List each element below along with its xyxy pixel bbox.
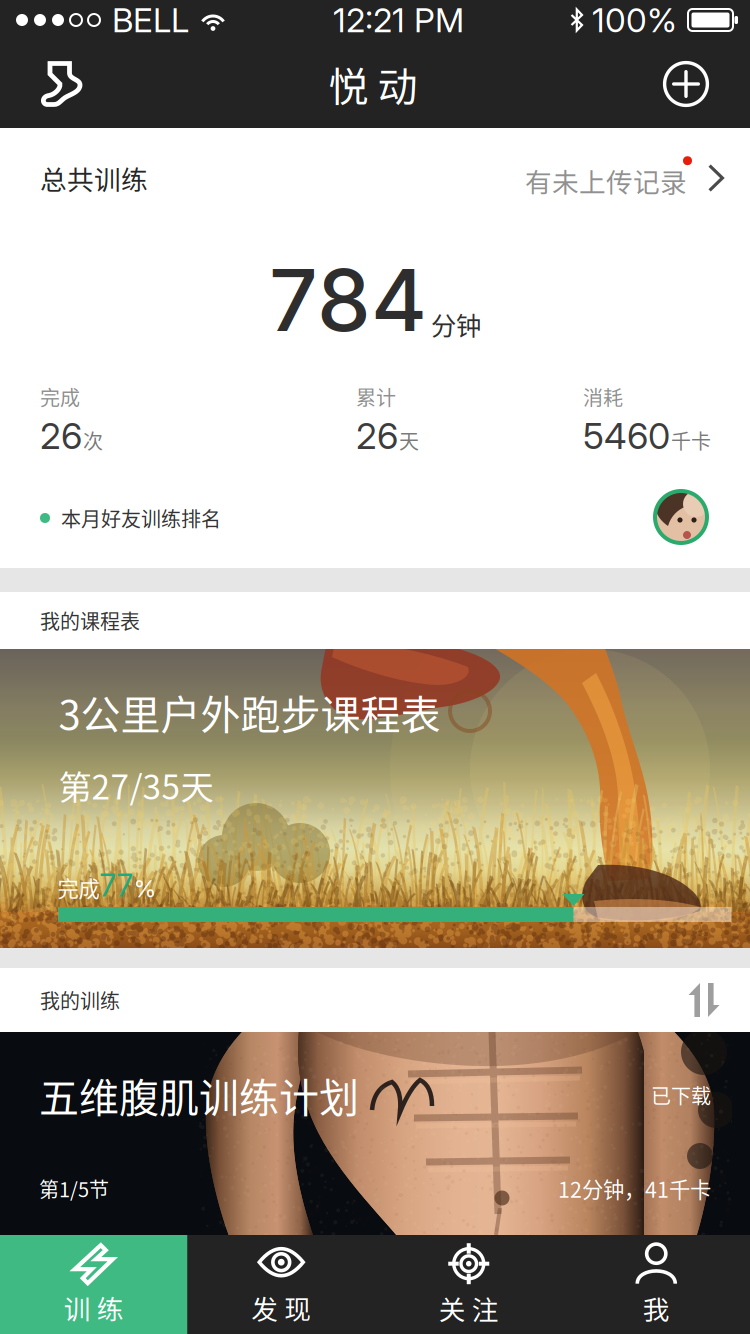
staticText: 已下载 — [651, 1080, 711, 1109]
staticText: 总共训练 — [40, 159, 148, 197]
staticText: 天 — [399, 426, 419, 455]
staticText: 关 注 — [439, 1289, 499, 1327]
staticText: % — [133, 874, 156, 903]
button[interactable]: 本月好友训练排名 — [0, 468, 750, 568]
staticText: 我 — [643, 1289, 670, 1327]
button[interactable]: 发 现 — [187, 1235, 375, 1334]
staticText: 12:21 PM — [333, 0, 464, 40]
staticText: 训 练 — [64, 1288, 124, 1327]
staticText: 12分钟，41千卡 — [558, 1173, 711, 1204]
staticText: 第27/35天 — [58, 761, 213, 809]
staticText: 77 — [99, 867, 133, 904]
button[interactable]: 有未上传记录 — [525, 142, 750, 214]
staticText: 本月好友训练排名 — [61, 503, 221, 532]
button[interactable]: 训 练 — [0, 1235, 187, 1334]
staticText: 千卡 — [671, 426, 711, 455]
staticText: 完成 — [57, 872, 99, 903]
staticText: 累计 — [356, 382, 396, 411]
staticText: 26 — [40, 414, 82, 458]
staticText: 26 — [356, 414, 398, 458]
button[interactable]: 关 注 — [375, 1235, 562, 1334]
staticText: 有未上传记录 — [525, 161, 687, 200]
button[interactable]: 我 — [562, 1235, 750, 1334]
staticText: 五维腹肌训练计划 — [39, 1066, 359, 1124]
staticText: 我的训练 — [40, 985, 120, 1014]
staticText: 我的课程表 — [40, 606, 140, 635]
button[interactable]: Add — [638, 40, 750, 128]
button[interactable]: 3公里户外跑步课程表 — [0, 649, 750, 948]
staticText: 发 现 — [251, 1288, 311, 1327]
staticText: 次 — [83, 426, 103, 455]
staticText: 悦 动 — [328, 55, 417, 113]
staticText: 第1/5节 — [39, 1174, 109, 1203]
staticText: 消耗 — [583, 382, 623, 411]
button[interactable]: Sort — [688, 972, 750, 1028]
button[interactable]: Steps — [0, 40, 108, 128]
staticText: 3公里户外跑步课程表 — [58, 683, 440, 741]
staticText: 5460 — [583, 414, 670, 458]
staticText: 100% — [592, 0, 677, 40]
staticText: 完成 — [40, 382, 80, 411]
staticText: 分钟 — [431, 306, 481, 343]
staticText: 784 — [269, 248, 427, 352]
staticText: BELL — [112, 0, 189, 40]
button[interactable]: 五维腹肌训练计划 — [0, 1032, 750, 1235]
